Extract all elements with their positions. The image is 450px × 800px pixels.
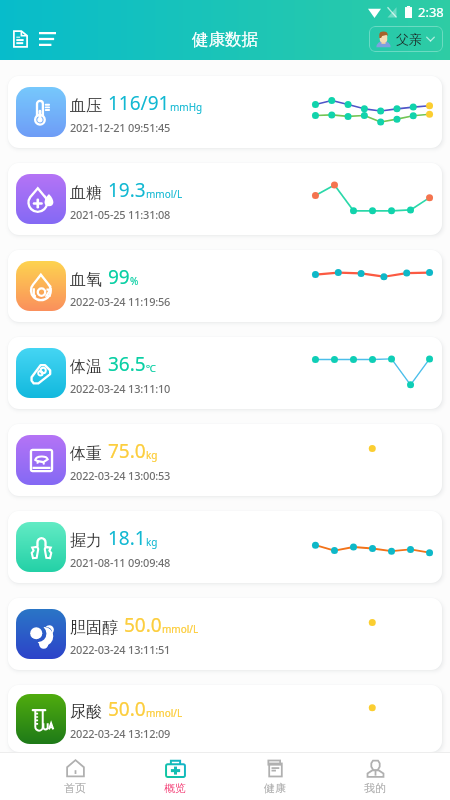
- button[interactable]: 首页: [25, 753, 125, 800]
- staticText: 2022-03-24 13:11:10: [70, 381, 171, 396]
- staticText: 健康数据: [192, 29, 258, 50]
- staticText: 50.0: [108, 696, 146, 722]
- staticText: 2022-03-24 13:00:53: [70, 468, 171, 483]
- button[interactable]: 健康: [225, 753, 325, 800]
- staticText: ℃: [146, 361, 156, 375]
- button[interactable]: Menu: [31, 24, 63, 54]
- button[interactable]: 握力: [8, 511, 442, 583]
- staticText: 75.0: [108, 438, 146, 464]
- button[interactable]: 体温: [8, 337, 442, 409]
- staticText: 体重: [70, 444, 102, 464]
- staticText: %: [130, 274, 139, 288]
- staticText: 血糖: [70, 183, 102, 203]
- button[interactable]: 概览: [125, 753, 225, 800]
- staticText: 2022-03-24 13:12:09: [70, 726, 171, 741]
- staticText: 50.0: [124, 612, 162, 638]
- button[interactable]: 血压: [8, 76, 442, 148]
- staticText: 握力: [70, 531, 102, 551]
- staticText: 血氧: [70, 270, 102, 290]
- staticText: kg: [146, 448, 158, 462]
- button[interactable]: 胆固醇: [8, 598, 442, 670]
- staticText: 2021-12-21 09:51:45: [70, 120, 171, 135]
- staticText: 概览: [164, 781, 186, 795]
- staticText: 体温: [70, 357, 102, 377]
- staticText: 2021-08-11 09:09:48: [70, 555, 171, 570]
- staticText: mmol/L: [146, 187, 183, 201]
- staticText: 36.5: [108, 351, 146, 377]
- staticText: 99: [108, 264, 130, 290]
- staticText: 父亲: [396, 31, 422, 47]
- button[interactable]: Report: [4, 22, 36, 56]
- staticText: 18.1: [108, 525, 146, 551]
- staticText: 19.3: [108, 177, 146, 203]
- staticText: 2022-03-24 13:11:51: [70, 642, 171, 657]
- button[interactable]: 尿酸: [8, 685, 442, 752]
- staticText: mmHg: [170, 100, 203, 114]
- button[interactable]: 父亲: [369, 26, 443, 52]
- staticText: 2022-03-24 11:19:56: [70, 294, 171, 309]
- staticText: 尿酸: [70, 702, 102, 722]
- staticText: 我的: [364, 781, 386, 795]
- staticText: 2021-05-25 11:31:08: [70, 207, 171, 222]
- staticText: mmol/L: [146, 706, 183, 720]
- staticText: 胆固醇: [70, 618, 118, 638]
- staticText: 116/91: [108, 90, 170, 116]
- staticText: 首页: [64, 781, 86, 795]
- staticText: 2:38: [418, 3, 444, 21]
- button[interactable]: 体重: [8, 424, 442, 496]
- button[interactable]: 血氧: [8, 250, 442, 322]
- staticText: kg: [146, 535, 158, 549]
- staticText: mmol/L: [162, 622, 199, 636]
- button[interactable]: 血糖: [8, 163, 442, 235]
- staticText: 血压: [70, 96, 102, 116]
- button[interactable]: 我的: [325, 753, 425, 800]
- staticText: 健康: [264, 781, 286, 795]
